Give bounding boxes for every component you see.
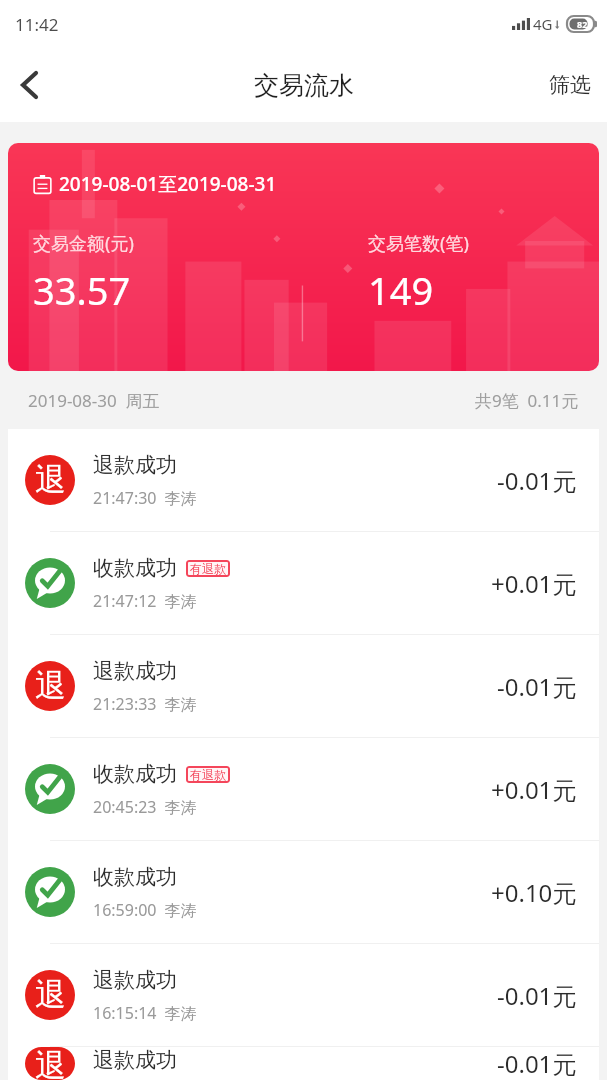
staticText: 16:15:14 李涛 bbox=[93, 1002, 197, 1024]
staticText: -0.01元 bbox=[497, 670, 577, 703]
staticText: 21:47:30 李涛 bbox=[93, 487, 197, 509]
staticText: 退 bbox=[35, 975, 66, 1014]
button[interactable]: 2019-08-01至2019-08-31 bbox=[8, 143, 599, 371]
staticText: 交易流水 bbox=[254, 70, 354, 101]
staticText: 收款成功 bbox=[93, 864, 177, 890]
staticText: 退款成功 bbox=[93, 658, 177, 684]
button[interactable]: 退 bbox=[8, 429, 599, 531]
staticText: 2019-08-30 周五 bbox=[28, 389, 160, 412]
staticText: 交易笔数(笔) bbox=[368, 231, 469, 256]
staticText: 退 bbox=[35, 460, 66, 499]
staticText: 33.57 bbox=[33, 264, 131, 316]
staticText: 收款成功 bbox=[93, 555, 177, 581]
staticText: 4G bbox=[533, 14, 553, 34]
button[interactable]: Back bbox=[0, 56, 58, 114]
staticText: 82 bbox=[577, 18, 588, 30]
staticText: 有退款 bbox=[190, 767, 226, 782]
staticText: 2019-08-01至2019-08-31 bbox=[59, 171, 277, 197]
staticText: 11:42 bbox=[15, 13, 59, 36]
staticText: -0.01元 bbox=[497, 464, 577, 497]
staticText: 21:23:33 李涛 bbox=[93, 693, 197, 715]
staticText: 交易金额(元) bbox=[33, 231, 134, 256]
staticText: +0.01元 bbox=[491, 773, 577, 806]
staticText: 21:47:12 李涛 bbox=[93, 590, 197, 612]
staticText: 16:59:00 李涛 bbox=[93, 899, 197, 921]
staticText: 149 bbox=[368, 264, 434, 316]
staticText: 退 bbox=[35, 666, 66, 705]
staticText: -0.01元 bbox=[497, 979, 577, 1012]
staticText: 退 bbox=[35, 1047, 66, 1079]
staticText: 共9笔 0.11元 bbox=[475, 389, 579, 412]
staticText: 退款成功 bbox=[93, 452, 177, 478]
staticText: 退款成功 bbox=[93, 967, 177, 993]
button[interactable]: 收款成功 bbox=[8, 532, 599, 634]
button[interactable]: 退 bbox=[8, 635, 599, 737]
staticText: 20:45:23 李涛 bbox=[93, 796, 197, 818]
staticText: 筛选 bbox=[549, 72, 591, 98]
button[interactable]: 退 bbox=[8, 1047, 599, 1080]
button[interactable]: 收款成功 bbox=[8, 841, 599, 943]
button[interactable]: 筛选 bbox=[549, 72, 591, 98]
button[interactable]: 收款成功 bbox=[8, 738, 599, 840]
staticText: 收款成功 bbox=[93, 761, 177, 787]
staticText: -0.01元 bbox=[497, 1047, 577, 1080]
staticText: 退款成功 bbox=[93, 1047, 177, 1073]
button[interactable]: 退 bbox=[8, 944, 599, 1046]
staticText: +0.10元 bbox=[491, 876, 577, 909]
staticText: 有退款 bbox=[190, 561, 226, 576]
staticText: +0.01元 bbox=[491, 567, 577, 600]
